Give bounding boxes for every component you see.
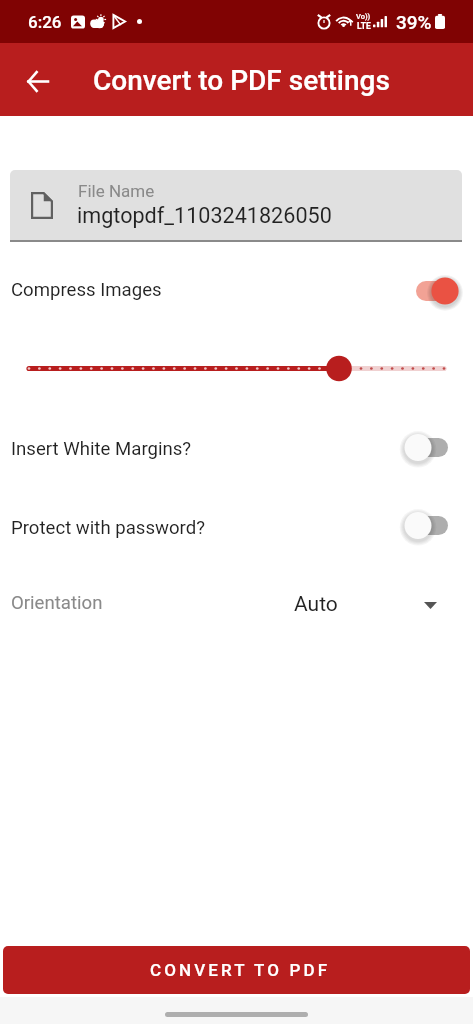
button[interactable]: Navigate up xyxy=(13,57,61,105)
staticText: Vo)) xyxy=(356,12,371,21)
button[interactable]: Compress Images xyxy=(0,266,473,314)
staticText: Convert to PDF settings xyxy=(93,64,390,97)
staticText: File Name xyxy=(78,181,155,201)
button[interactable]: CONVERT TO PDF xyxy=(3,946,470,994)
staticText: Orientation xyxy=(11,592,103,614)
button[interactable]: File Name xyxy=(10,170,462,242)
button[interactable]: Insert White Margins? xyxy=(0,424,473,472)
staticText: Protect with password? xyxy=(11,517,205,539)
staticText: LTE xyxy=(357,21,371,31)
button[interactable]: Insert White Margins? toggle xyxy=(403,433,453,463)
staticText: CONVERT TO PDF xyxy=(150,960,331,980)
button[interactable] xyxy=(0,352,473,384)
button[interactable]: Protect with password? xyxy=(0,503,473,551)
button[interactable]: Orientation xyxy=(0,585,473,623)
staticText: imgtopdf_1103241826050 xyxy=(77,203,332,228)
staticText: Compress Images xyxy=(11,279,162,301)
button[interactable]: Protect with password? toggle xyxy=(403,511,453,541)
button[interactable]: Compress images toggle xyxy=(414,276,464,306)
staticText: 6:26 xyxy=(28,12,62,32)
staticText: 39% xyxy=(396,11,432,33)
staticText: Auto xyxy=(294,592,338,617)
staticText: Insert White Margins? xyxy=(11,438,192,460)
